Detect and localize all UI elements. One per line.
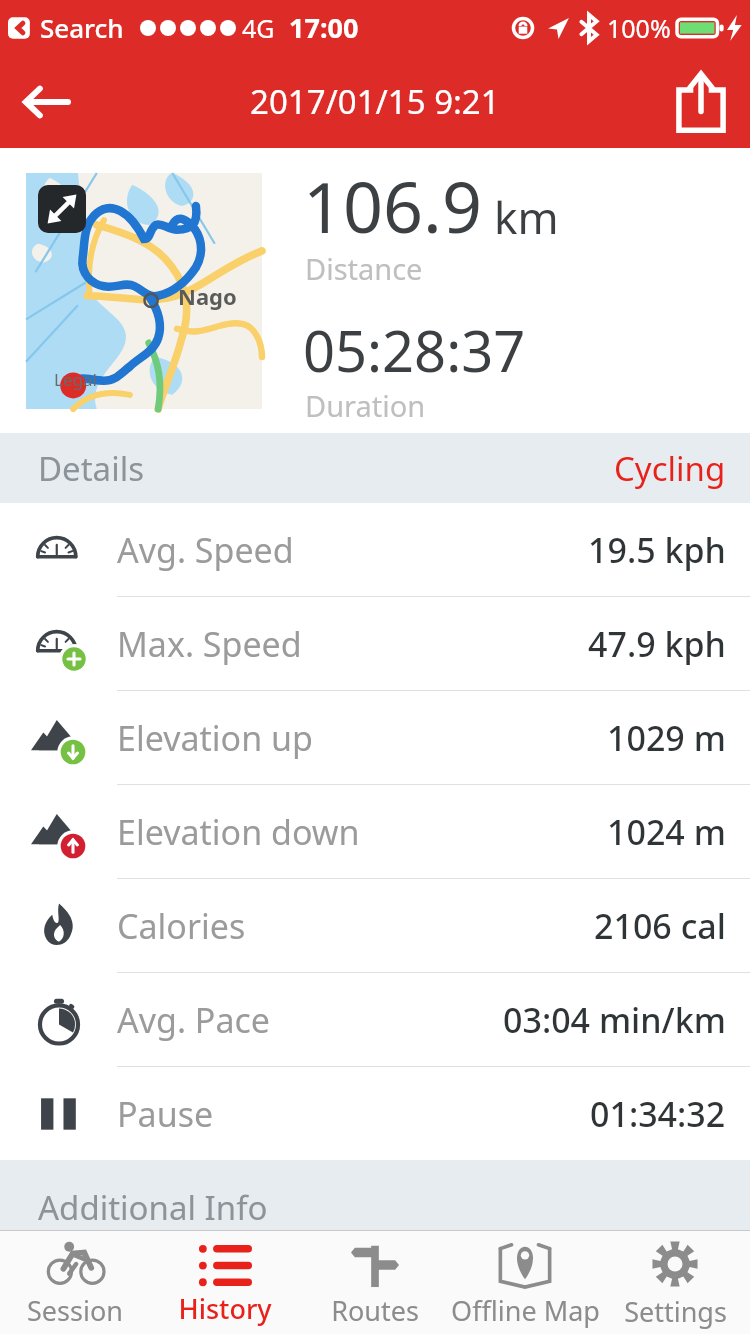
staticText: Avg. Pace bbox=[117, 997, 270, 1043]
button[interactable]: History bbox=[150, 1238, 300, 1327]
staticText: 1029 m bbox=[607, 715, 726, 761]
button[interactable]: Max. Speed bbox=[0, 597, 750, 690]
button[interactable]: Map bbox=[26, 173, 262, 409]
staticText: Legal bbox=[54, 368, 97, 391]
staticText: 4G bbox=[242, 11, 275, 45]
staticText: Pause bbox=[117, 1091, 214, 1137]
staticText: 05:28:37 bbox=[303, 312, 526, 388]
staticText: Offline Map bbox=[451, 1292, 600, 1329]
button[interactable]: Elevation down bbox=[0, 785, 750, 878]
staticText: 106.9 bbox=[303, 158, 482, 253]
button[interactable]: Session bbox=[0, 1236, 150, 1329]
staticText: Max. Speed bbox=[117, 621, 302, 667]
staticText: Details bbox=[38, 446, 144, 491]
staticText: 1024 m bbox=[607, 809, 726, 855]
staticText: 2106 cal bbox=[594, 903, 726, 949]
staticText: 47.9 kph bbox=[588, 621, 726, 667]
staticText: Session bbox=[27, 1292, 123, 1329]
button[interactable]: Expand map bbox=[38, 185, 86, 233]
staticText: 01:34:32 bbox=[590, 1091, 726, 1137]
staticText: Additional Info bbox=[38, 1185, 268, 1230]
staticText: Duration bbox=[305, 386, 426, 425]
button[interactable]: Settings bbox=[600, 1235, 750, 1330]
staticText: 17:00 bbox=[289, 9, 359, 46]
staticText: 03:04 min/km bbox=[503, 997, 726, 1043]
button[interactable]: Calories bbox=[0, 879, 750, 972]
staticText: Cycling bbox=[614, 446, 726, 491]
button[interactable]: Back bbox=[14, 70, 78, 134]
staticText: Elevation up bbox=[117, 715, 313, 761]
button[interactable]: Cycling bbox=[614, 446, 726, 491]
button[interactable]: Share bbox=[666, 67, 736, 137]
staticText: Settings bbox=[624, 1293, 727, 1330]
staticText: Nago bbox=[178, 281, 237, 311]
staticText: Avg. Speed bbox=[117, 527, 294, 573]
staticText: 2017/01/15 9:21 bbox=[250, 79, 500, 124]
staticText: 100% bbox=[607, 11, 671, 45]
staticText: History bbox=[178, 1290, 272, 1327]
button[interactable]: Routes bbox=[300, 1236, 450, 1329]
staticText: Elevation down bbox=[117, 809, 360, 855]
staticText: km bbox=[494, 187, 559, 247]
staticText: 19.5 kph bbox=[588, 527, 726, 573]
staticText: Distance bbox=[305, 249, 423, 288]
staticText: Search bbox=[40, 10, 124, 45]
button[interactable]: Avg. Pace bbox=[0, 973, 750, 1066]
button[interactable]: Pause bbox=[0, 1067, 750, 1160]
staticText: Routes bbox=[331, 1292, 419, 1329]
button[interactable]: Offline Map bbox=[450, 1236, 600, 1329]
staticText: Calories bbox=[117, 903, 246, 949]
button[interactable]: Elevation up bbox=[0, 691, 750, 784]
button[interactable]: Avg. Speed bbox=[0, 503, 750, 596]
